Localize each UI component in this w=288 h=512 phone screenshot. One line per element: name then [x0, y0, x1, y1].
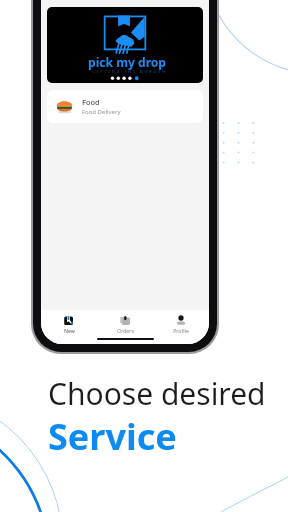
staticText: New: [64, 327, 75, 333]
button[interactable]: Orders: [97, 310, 153, 333]
staticText: Orders: [117, 327, 134, 333]
button[interactable]: Profile: [153, 310, 209, 333]
staticText: LIFTING THE BURDEN: [93, 69, 168, 75]
staticText: Food Delivery: [82, 108, 121, 116]
staticText: Profile: [173, 327, 189, 333]
staticText: pick my drop: [88, 54, 166, 70]
button[interactable]: New: [41, 310, 97, 333]
staticText: Food: [82, 97, 100, 107]
staticText: Service: [48, 412, 177, 461]
button[interactable]: pick my drop: [47, 7, 203, 83]
button[interactable]: Food: [47, 90, 203, 123]
staticText: Choose desired: [48, 373, 266, 414]
